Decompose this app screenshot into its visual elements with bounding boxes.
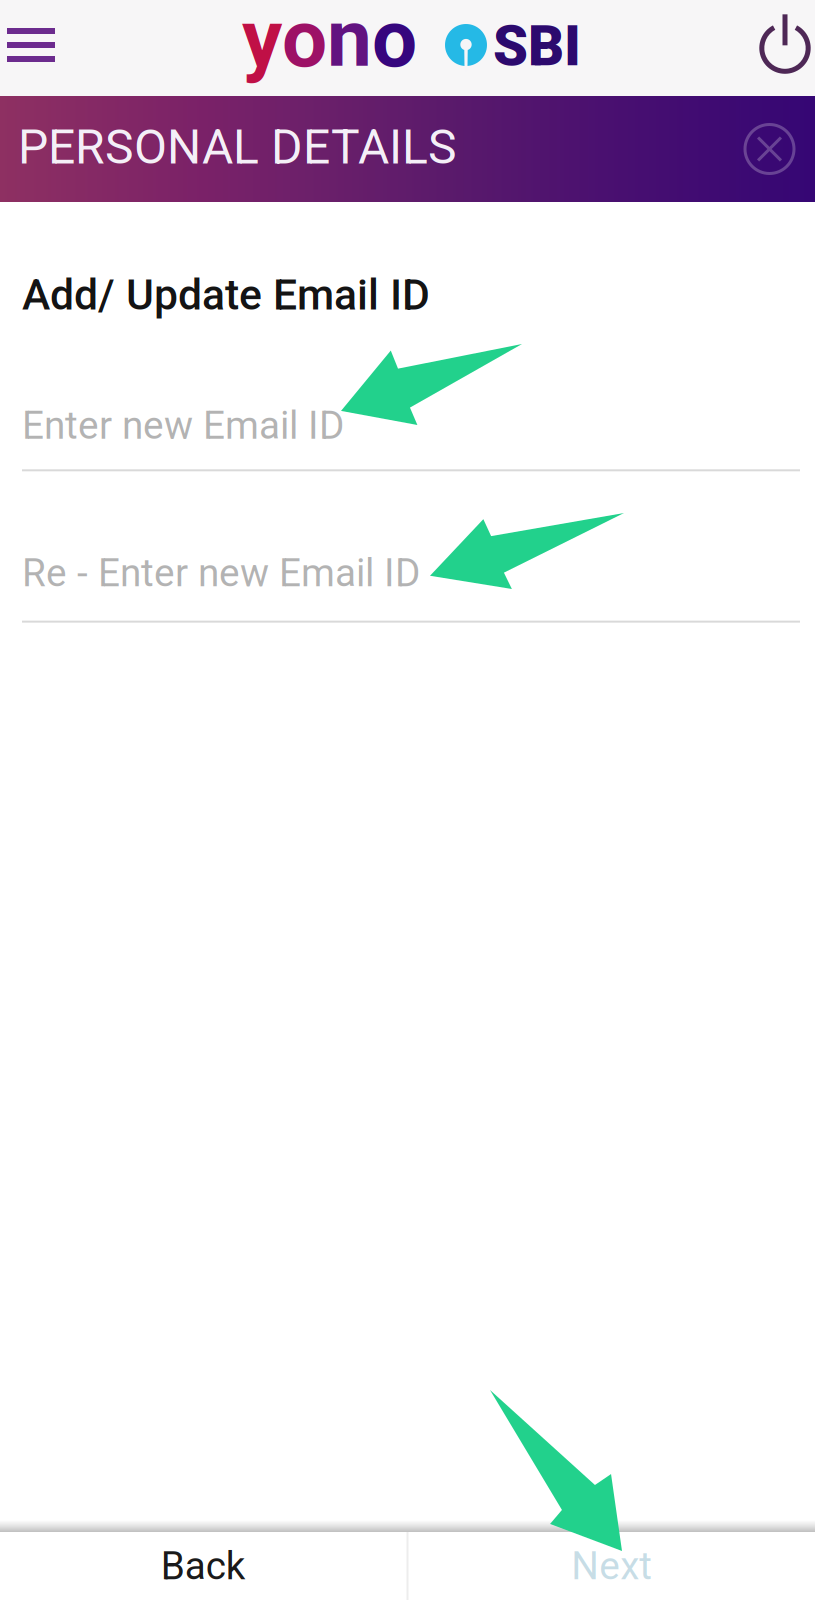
staticText: Re - Enter new Email ID (22, 550, 420, 596)
button[interactable]: Menu (0, 0, 65, 96)
button[interactable]: Next (408, 1532, 815, 1600)
staticText: Enter new Email ID (22, 403, 344, 448)
button[interactable]: Back (0, 1532, 406, 1600)
button[interactable]: Close (734, 96, 815, 202)
staticText: Back (161, 1543, 246, 1589)
staticText: Add/ Update Email ID (22, 270, 430, 320)
staticText: y (242, 0, 282, 86)
staticText: Next (571, 1543, 652, 1589)
staticText: SBI (493, 13, 581, 79)
staticText: o (282, 0, 327, 86)
button[interactable]: Log out (756, 0, 815, 96)
staticText: PERSONAL DETAILS (18, 119, 457, 175)
staticText: n (327, 0, 372, 86)
staticText: o (372, 0, 417, 86)
